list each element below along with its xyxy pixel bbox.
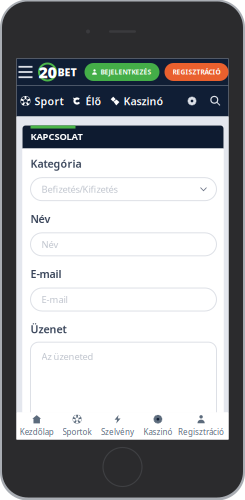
- button[interactable]: Szelvény: [97, 412, 138, 439]
- button[interactable]: Sport: [20, 94, 63, 108]
- button[interactable]: BEJELENTKEZÉS: [84, 63, 159, 81]
- button[interactable]: Search: [209, 95, 221, 107]
- staticText: E-mail: [41, 293, 67, 306]
- staticText: KAPCSOLAT: [30, 130, 82, 142]
- button[interactable]: Regisztráció: [178, 412, 218, 439]
- staticText: Név: [30, 212, 50, 226]
- button[interactable]: Sportok: [57, 412, 97, 439]
- button[interactable]: Kaszinó: [138, 412, 178, 439]
- staticText: Kategória: [30, 156, 81, 171]
- staticText: BET: [57, 65, 76, 79]
- staticText: Kezdőlap: [20, 427, 54, 437]
- staticText: Élő: [85, 94, 101, 108]
- staticText: Regisztráció: [178, 427, 224, 437]
- staticText: Sport: [34, 94, 63, 108]
- staticText: Név: [41, 238, 58, 250]
- button[interactable]: Settings: [185, 94, 198, 107]
- staticText: BEJELENTKEZÉS: [100, 68, 151, 76]
- button[interactable]: Menu: [18, 66, 32, 78]
- staticText: Az üzeneted: [41, 350, 93, 363]
- button[interactable]: Élő: [72, 94, 101, 108]
- staticText: Sportok: [63, 427, 92, 437]
- button[interactable]: Kaszinó: [110, 94, 163, 108]
- staticText: Kaszinó: [123, 94, 163, 108]
- staticText: 20: [38, 61, 56, 83]
- staticText: Befizetés/Kifizetés: [41, 183, 117, 195]
- staticText: Kaszinó: [143, 427, 172, 437]
- button[interactable]: REGISZTRÁCIÓ: [164, 63, 228, 81]
- staticText: Szelvény: [101, 427, 134, 437]
- staticText: Üzenet: [30, 322, 66, 336]
- staticText: REGISZTRÁCIÓ: [172, 68, 220, 76]
- button[interactable]: Kezdőlap: [16, 412, 57, 439]
- staticText: E-mail: [30, 267, 61, 281]
